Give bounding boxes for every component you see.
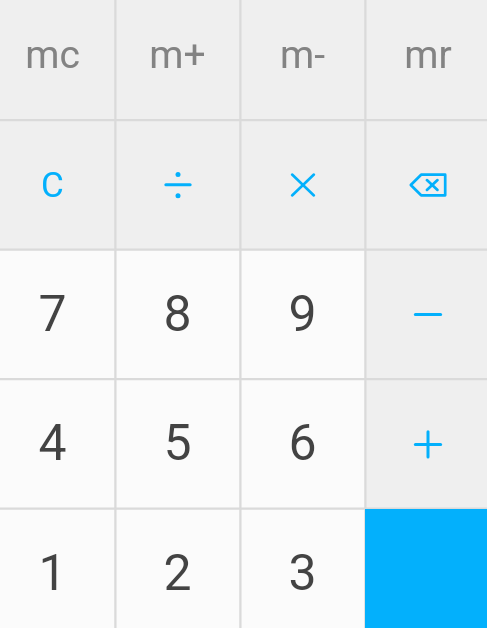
button[interactable]: 2 [115,509,240,628]
button[interactable]: Plus [365,379,487,509]
staticText: 3 [288,544,317,603]
button[interactable]: mc [0,0,115,121]
staticText: 6 [288,414,317,473]
button[interactable]: C [0,120,115,250]
staticText: m+ [149,32,206,78]
staticText: m- [280,32,325,78]
staticText: mr [404,32,452,78]
staticText: 4 [38,414,67,473]
button[interactable]: 9 [240,250,365,380]
button[interactable]: 1 [0,509,115,628]
button[interactable]: 6 [240,379,365,509]
staticText: 8 [163,285,192,344]
button[interactable]: Backspace [365,120,487,250]
button[interactable]: m- [240,0,365,121]
button[interactable]: Multiply [240,120,365,250]
button[interactable]: Divide [115,120,240,250]
button[interactable]: 5 [115,379,240,509]
staticText: 7 [38,285,67,344]
staticText: mc [25,32,80,78]
staticText: 1 [38,544,67,603]
button[interactable]: m+ [115,0,240,121]
staticText: 2 [163,544,192,603]
button[interactable]: 7 [0,250,115,380]
staticText: 5 [163,414,192,473]
button[interactable]: mr [365,0,487,121]
button[interactable]: Minus [365,250,487,380]
button[interactable]: 3 [240,509,365,628]
button[interactable]: 4 [0,379,115,509]
staticText: 9 [288,285,317,344]
button[interactable]: 8 [115,250,240,380]
staticText: C [41,165,64,206]
